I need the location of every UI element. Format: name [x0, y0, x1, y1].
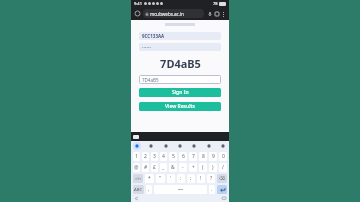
button[interactable]: mcubwebs.ac.in [145, 9, 202, 18]
staticText: @ [134, 164, 139, 171]
button[interactable]: •••••• [142, 43, 218, 51]
button[interactable]: 1 [133, 152, 140, 161]
button[interactable]: Clipboard [133, 135, 139, 139]
button[interactable]: Enter [217, 185, 227, 194]
staticText: " [159, 175, 162, 182]
button[interactable]: + [189, 163, 197, 172]
staticText: 7 [192, 153, 195, 160]
button[interactable]: Hide keyboard [221, 196, 226, 201]
button[interactable]: Google [133, 142, 141, 150]
staticText: * [148, 175, 151, 182]
button[interactable]: 9CC133AA [142, 32, 218, 40]
staticText: ABC [134, 187, 143, 193]
staticText: ! [200, 175, 202, 182]
staticText: _ [162, 164, 165, 171]
staticText: =\< [135, 176, 142, 182]
staticText: Sign In [172, 89, 189, 96]
staticText: 2 [144, 153, 147, 160]
button[interactable]: Stickers [147, 142, 155, 150]
button[interactable]: - [179, 163, 187, 172]
staticText: 3 [153, 153, 156, 160]
button[interactable]: 8 [199, 152, 207, 161]
button[interactable]: Settings [190, 142, 198, 150]
button[interactable]: Symbols [133, 174, 143, 183]
staticText: 9CC133AA [142, 33, 165, 39]
button[interactable]: , [146, 185, 152, 194]
button[interactable]: ? [207, 174, 215, 183]
staticText: 4 [162, 153, 165, 160]
staticText: 78 [213, 1, 218, 6]
button[interactable]: 4 [160, 152, 167, 161]
staticText: ; [190, 175, 192, 182]
staticText: , [148, 186, 150, 193]
button[interactable]: Tabs [213, 10, 220, 17]
button[interactable]: 7D4aB5 [142, 75, 218, 84]
staticText: ( [202, 164, 204, 171]
staticText: . [211, 186, 213, 193]
staticText: •••••• [142, 45, 152, 50]
staticText: 8 [202, 153, 205, 160]
staticText: & [171, 164, 175, 171]
button[interactable]: More options [220, 11, 226, 17]
button[interactable]: Letters [133, 185, 144, 194]
button[interactable]: Voice search [206, 10, 213, 17]
button[interactable]: ! [197, 174, 205, 183]
staticText: View Results [165, 103, 195, 110]
staticText: £ [153, 164, 156, 171]
button[interactable]: ) [209, 163, 217, 172]
staticText: mcubwebs.ac.in [150, 11, 184, 17]
button[interactable]: Back [134, 196, 139, 201]
button[interactable]: / [219, 163, 227, 172]
staticText: / [222, 164, 224, 171]
button[interactable]: GIF [162, 142, 170, 150]
button[interactable]: 0 [219, 152, 227, 161]
button[interactable]: 2 [142, 152, 149, 161]
button[interactable]: ; [187, 174, 195, 183]
button[interactable]: _ [160, 163, 167, 172]
staticText: 1 [135, 153, 138, 160]
button[interactable]: £ [151, 163, 158, 172]
button[interactable]: Backspace [217, 174, 227, 183]
staticText: 5 [172, 153, 175, 160]
button[interactable]: 6 [179, 152, 187, 161]
button[interactable]: Space [154, 185, 207, 194]
staticText: ' [170, 175, 172, 182]
staticText: + [192, 164, 195, 171]
button[interactable]: " [156, 174, 165, 183]
button[interactable]: # [142, 163, 149, 172]
button[interactable]: & [169, 163, 177, 172]
button[interactable]: 9 [209, 152, 217, 161]
staticText: : [180, 175, 182, 182]
button[interactable]: ( [199, 163, 207, 172]
staticText: 7D4aB5 [160, 56, 201, 71]
button[interactable]: 3 [151, 152, 158, 161]
staticText: ? [210, 175, 213, 182]
button[interactable]: 5 [169, 152, 177, 161]
button[interactable]: : [177, 174, 185, 183]
staticText: - [182, 164, 184, 171]
button[interactable]: @ [133, 163, 140, 172]
staticText: # [144, 164, 148, 171]
button[interactable]: Home [134, 10, 141, 17]
button[interactable]: . [209, 185, 215, 194]
button[interactable]: Sign In [139, 88, 221, 97]
button[interactable]: View Results [139, 102, 221, 111]
staticText: 9 [212, 153, 215, 160]
staticText: ) [212, 164, 214, 171]
button[interactable]: Voice input [219, 142, 227, 150]
staticText: 9:41 [134, 1, 142, 6]
button[interactable]: 7 [189, 152, 197, 161]
staticText: 7D4aB5 [142, 77, 159, 83]
button[interactable]: More [205, 142, 213, 150]
staticText: 6 [182, 153, 185, 160]
button[interactable]: * [145, 174, 154, 183]
staticText: 0 [222, 153, 225, 160]
button[interactable]: Translate [176, 142, 184, 150]
button[interactable]: ' [167, 174, 175, 183]
staticText: ⌫ [219, 176, 225, 181]
